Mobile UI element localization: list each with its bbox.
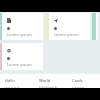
button[interactable]: Cards	[67, 74, 100, 88]
staticText: World	[39, 78, 51, 83]
button[interactable]: icon	[0, 43, 43, 70]
other: icon	[7, 48, 11, 53]
other: icon	[7, 18, 11, 23]
button[interactable]: Hello	[0, 74, 34, 88]
staticText: Lorem ipsum	[7, 62, 32, 67]
staticText: aaaaa	[5, 85, 20, 88]
staticText: Lorem ipsum	[54, 32, 79, 37]
staticText: Lorem ipsum	[7, 32, 32, 37]
staticText: Hello	[5, 78, 15, 83]
button[interactable]: World	[34, 74, 67, 88]
staticText: Cards	[72, 78, 83, 83]
button[interactable]: icon	[45, 13, 90, 40]
button[interactable]: icon	[92, 13, 98, 40]
button[interactable]: icon	[0, 13, 43, 40]
staticText: bbbbbb	[39, 85, 58, 88]
other: icon	[54, 18, 58, 23]
staticText: ccccc	[72, 85, 85, 88]
